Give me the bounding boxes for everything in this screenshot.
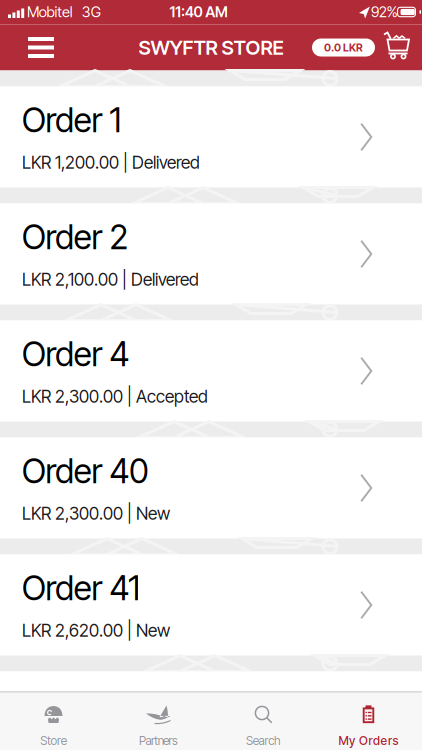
staticText: 11:40 AM [169, 3, 228, 21]
button[interactable]: Order 4 [0, 320, 422, 421]
button[interactable]: My Orders [316, 692, 421, 750]
staticText: LKR 2,300.00 | New [22, 503, 170, 524]
button[interactable]: Store [1, 692, 106, 750]
staticText: 3G [82, 3, 101, 21]
button[interactable]: Order 41 [0, 554, 422, 655]
button[interactable]: Order 2 [0, 203, 422, 304]
staticText: Search [246, 733, 281, 748]
staticText: Order 2 [22, 217, 129, 257]
staticText: LKR 2,620.00 | New [22, 620, 170, 641]
button[interactable]: Search [211, 692, 316, 750]
button[interactable]: Shopping cart [375, 32, 422, 63]
staticText: LKR 1,200.00 | Delivered [22, 152, 200, 173]
staticText: LKR 2,300.00 | Accepted [22, 386, 208, 407]
button[interactable]: Partners [106, 692, 211, 750]
staticText: 0.0 LKR [324, 41, 363, 54]
staticText: Partners [139, 733, 178, 748]
button[interactable]: Menu [0, 37, 64, 58]
staticText: Mobitel [27, 3, 73, 21]
button[interactable]: Order 1 [0, 86, 422, 187]
staticText: LKR 2,100.00 | Delivered [22, 269, 199, 290]
staticText: Store [40, 733, 67, 748]
staticText: Order 1 [22, 100, 122, 140]
staticText: 92% [371, 3, 397, 21]
staticText: SWYFTR STORE [138, 36, 283, 59]
staticText: Order 41 [22, 568, 140, 608]
button[interactable]: Order 40 [0, 437, 422, 538]
button[interactable]: Cart total 0.0 LKR [312, 38, 375, 56]
staticText: My Orders [338, 733, 398, 748]
staticText: Order 40 [22, 451, 148, 491]
staticText: Order 4 [22, 334, 130, 374]
